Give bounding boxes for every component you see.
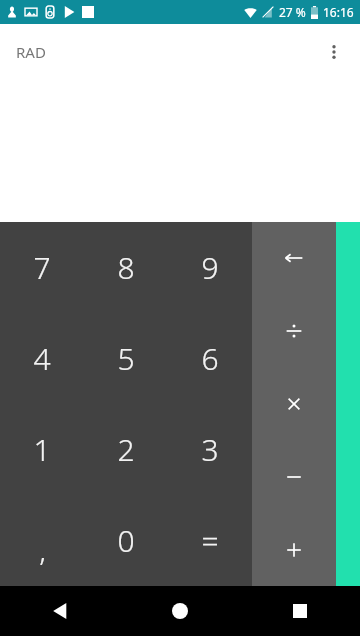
- staticText: 7: [33, 247, 51, 288]
- staticText: 6: [201, 338, 219, 379]
- button[interactable]: Add: [252, 513, 336, 586]
- button[interactable]: 0: [84, 495, 168, 586]
- staticText: 9: [201, 247, 219, 288]
- staticText: ,: [39, 529, 46, 570]
- button[interactable]: 3: [168, 404, 252, 495]
- staticText: RAD: [16, 42, 46, 62]
- staticText: 1: [33, 429, 51, 470]
- button[interactable]: =: [168, 495, 252, 586]
- button[interactable]: 6: [168, 313, 252, 404]
- button[interactable]: Back: [36, 587, 84, 635]
- button[interactable]: 5: [84, 313, 168, 404]
- staticText: =: [201, 520, 219, 561]
- button[interactable]: Recents: [276, 587, 324, 635]
- staticText: 4: [33, 338, 51, 379]
- button[interactable]: 1: [0, 404, 84, 495]
- staticText: 0: [117, 520, 135, 561]
- button[interactable]: Subtract: [252, 440, 336, 513]
- staticText: 2: [117, 429, 135, 470]
- button[interactable]: Multiply: [252, 367, 336, 440]
- staticText: 8: [117, 247, 135, 288]
- staticText: 16:16: [323, 4, 354, 20]
- staticText: 5: [117, 338, 135, 379]
- button[interactable]: More options: [316, 34, 352, 70]
- button[interactable]: Divide: [252, 294, 336, 367]
- button[interactable]: 7: [0, 222, 84, 313]
- button[interactable]: 8: [84, 222, 168, 313]
- staticText: 27 %: [279, 4, 306, 20]
- button[interactable]: 2: [84, 404, 168, 495]
- button[interactable]: RAD: [4, 34, 58, 70]
- staticText: 3: [201, 429, 219, 470]
- button[interactable]: ,: [0, 495, 84, 586]
- button[interactable]: Backspace: [252, 222, 336, 294]
- button[interactable]: 9: [168, 222, 252, 313]
- button[interactable]: Home: [156, 587, 204, 635]
- button[interactable]: 4: [0, 313, 84, 404]
